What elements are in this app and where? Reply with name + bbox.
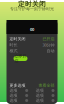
button[interactable]: 立即开启 [13,56,27,61]
staticText: 专注守护每一刻宁静时光 [10,6,54,11]
staticText: 定时关闭 [18,0,46,8]
staticText: 查看全部 [38,83,54,88]
staticText: 模式 [9,48,17,53]
staticText: 选项 [9,93,17,98]
staticText: 30分钟 [42,42,54,48]
staticText: 更多选项 [9,83,25,88]
staticText: 自动 [46,48,54,53]
staticText: 选项 [9,88,17,93]
staticText: 定时关闭 [9,36,25,41]
staticText: 选项 [36,93,44,98]
staticText: 选项 [36,88,44,93]
staticText: 00 [30,27,34,32]
staticText: 选项 [36,98,44,103]
staticText: 选项 [9,98,17,103]
staticText: 时长 [9,42,17,47]
staticText: 已开启 [42,36,54,41]
staticText: 立即开启 [14,54,26,63]
